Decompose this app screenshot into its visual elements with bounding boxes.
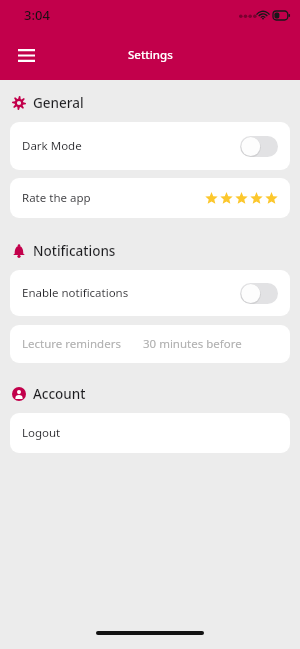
staticText: Notifications xyxy=(33,242,116,260)
staticText: Enable notifications xyxy=(22,285,129,301)
staticText: General xyxy=(33,94,84,112)
button[interactable]: Lecture reminders xyxy=(10,325,290,363)
staticText: Rate the app xyxy=(22,190,91,206)
button[interactable]: Rate the app xyxy=(10,178,290,218)
staticText: Dark Mode xyxy=(22,138,82,154)
staticText: 30 minutes before xyxy=(143,336,242,352)
staticText: Lecture reminders xyxy=(22,336,121,352)
staticText: Account xyxy=(33,385,86,403)
button[interactable]: Toggle xyxy=(240,283,278,304)
staticText: Settings xyxy=(128,47,173,63)
button[interactable]: Toggle xyxy=(240,136,278,157)
button[interactable]: Logout xyxy=(10,413,290,453)
button[interactable]: Enable notifications xyxy=(10,270,290,316)
staticText: 3:04 xyxy=(24,6,50,24)
staticText: Logout xyxy=(22,425,61,441)
button[interactable]: Open navigation menu xyxy=(8,37,44,73)
button[interactable]: Rate five stars xyxy=(205,192,278,205)
button[interactable]: Dark Mode xyxy=(10,122,290,170)
